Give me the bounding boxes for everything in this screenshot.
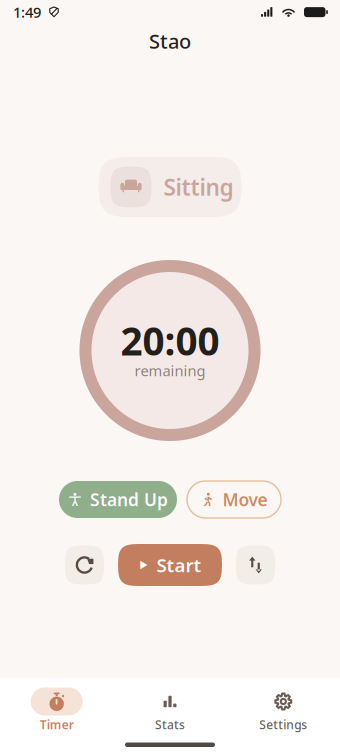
staticText: 20:00 [120,315,219,366]
staticText: Timer [40,716,74,732]
staticText: Stats [155,716,185,732]
staticText: remaining [134,361,205,380]
staticText: Sitting [163,172,233,202]
staticText: Start [156,553,201,577]
button[interactable]: Sitting [98,157,241,217]
button[interactable]: Move [187,481,281,518]
staticText: Settings [259,716,307,732]
button[interactable]: Stats [113,686,227,732]
staticText: 1:49 [13,2,41,22]
button[interactable]: Timer [0,686,113,732]
staticText: Stand Up [90,488,168,511]
staticText: Move [222,488,267,511]
button[interactable]: Start [118,544,222,586]
button[interactable]: Switch activity [236,545,275,584]
button[interactable]: Settings [227,686,340,732]
button[interactable]: Reset timer [65,545,104,584]
staticText: Stao [149,28,191,54]
button[interactable]: Stand Up [59,481,177,518]
